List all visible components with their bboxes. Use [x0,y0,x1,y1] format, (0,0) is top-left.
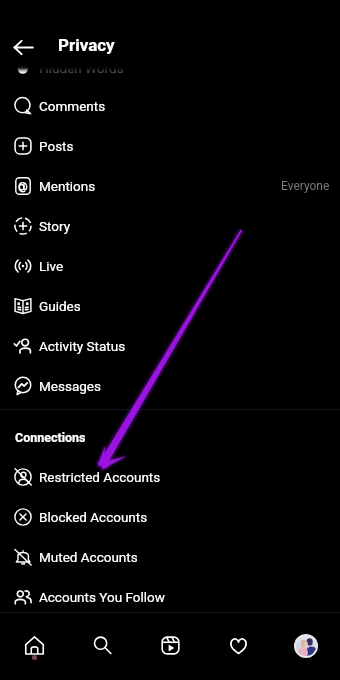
staticText: Blocked Accounts [39,509,148,525]
button[interactable]: Home [0,613,68,680]
staticText: Live [39,258,64,274]
staticText: Restricted Accounts [39,469,161,485]
staticText: Guides [39,298,81,314]
staticText: Activity Status [39,338,126,354]
button[interactable]: Guides [0,286,340,326]
staticText: Mentions [39,178,96,194]
button[interactable]: Back [5,29,42,66]
staticText: Connections [15,430,86,444]
button[interactable]: Posts [0,126,340,166]
button[interactable]: Muted Accounts [0,537,340,577]
button[interactable]: Live [0,246,340,286]
button[interactable]: Reels [136,613,204,680]
staticText: Comments [39,98,106,114]
button[interactable]: Comments [0,86,340,126]
staticText: Everyone [281,179,330,193]
button[interactable]: Story [0,206,340,246]
staticText: Muted Accounts [39,549,138,565]
button[interactable]: Activity Status [0,326,340,366]
button[interactable]: Search [68,613,136,680]
button[interactable]: Notifications [204,613,272,680]
button[interactable]: Profile [272,613,340,680]
staticText: Story [39,218,71,234]
button[interactable]: Mentions [0,166,340,206]
staticText: Messages [39,378,101,394]
button[interactable]: Messages [0,366,340,406]
staticText: Accounts You Follow [39,589,165,605]
staticText: Hidden Words [39,60,124,76]
button[interactable]: Accounts You Follow [0,577,340,617]
button[interactable]: Blocked Accounts [0,497,340,537]
button[interactable]: Restricted Accounts [0,457,340,497]
staticText: Privacy [58,35,115,55]
staticText: Posts [39,138,74,154]
